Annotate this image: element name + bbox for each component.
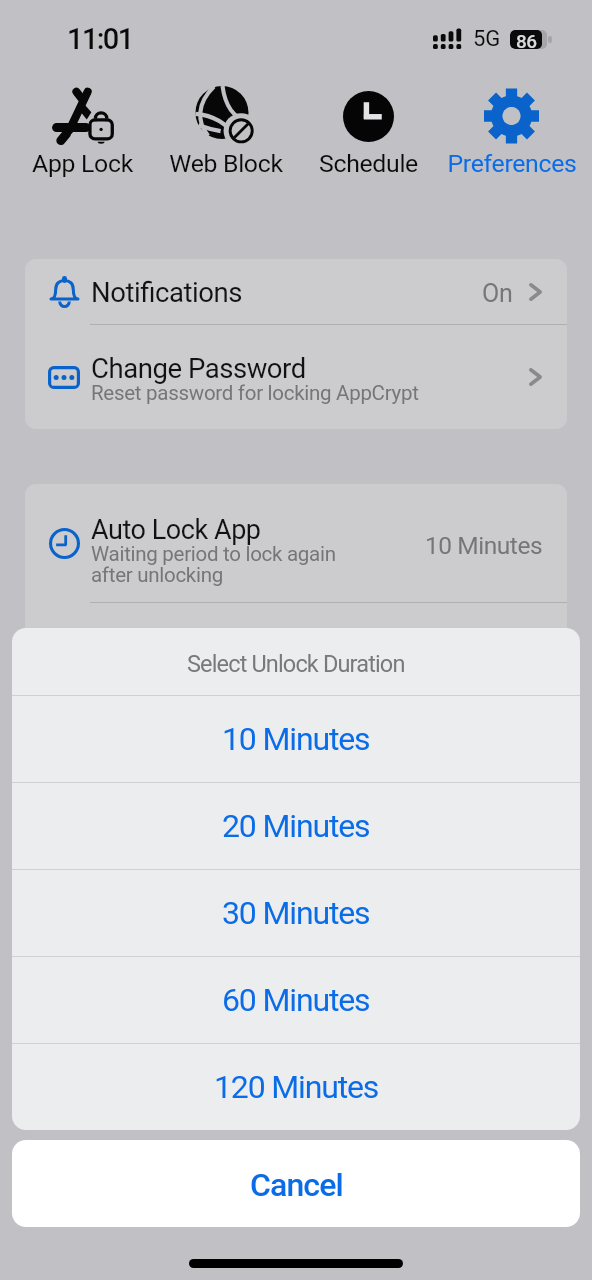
other: Preferences <box>484 88 539 144</box>
staticText: Preferences <box>447 149 577 178</box>
staticText: 60 Minutes <box>222 981 370 1019</box>
button[interactable]: Preferences <box>440 75 583 178</box>
staticText: 11:01 <box>67 22 133 56</box>
button[interactable]: 10 Minutes <box>12 696 580 782</box>
staticText: Cancel <box>250 1166 343 1204</box>
button[interactable]: 120 Minutes <box>12 1044 580 1130</box>
staticText: Auto Lock App <box>91 514 261 546</box>
button[interactable]: App Lock <box>10 75 154 178</box>
staticText: On <box>482 279 513 308</box>
other: App Lock <box>52 89 113 143</box>
button[interactable]: Schedule <box>297 75 440 178</box>
staticText: 10 Minutes <box>222 720 370 758</box>
staticText: 10 Minutes <box>425 531 543 560</box>
staticText: App Lock <box>32 149 133 178</box>
button[interactable]: Change Password <box>25 325 567 429</box>
staticText: Reset password for locking AppCrypt <box>91 381 419 405</box>
button[interactable]: Web Block <box>154 75 297 178</box>
button[interactable]: 30 Minutes <box>12 870 580 956</box>
button[interactable]: 20 Minutes <box>12 783 580 869</box>
other: Schedule <box>343 91 394 142</box>
staticText: Schedule <box>319 149 418 178</box>
staticText: 30 Minutes <box>222 894 370 932</box>
staticText: Change Password <box>91 352 306 384</box>
button[interactable]: 60 Minutes <box>12 957 580 1043</box>
button[interactable]: Cancel <box>12 1140 580 1227</box>
button[interactable]: Notifications <box>25 259 567 324</box>
button[interactable]: Auto Lock App <box>25 484 567 602</box>
staticText: 86 <box>516 30 537 49</box>
staticText: Waiting period to lock again after unloc… <box>91 542 336 587</box>
staticText: Web Block <box>169 149 283 178</box>
staticText: 5G <box>473 26 500 52</box>
staticText: 20 Minutes <box>222 807 370 845</box>
staticText: 120 Minutes <box>214 1068 379 1106</box>
staticText: Select Unlock Duration <box>187 650 405 678</box>
staticText: Notifications <box>91 276 242 308</box>
other: Web Block <box>195 86 257 147</box>
